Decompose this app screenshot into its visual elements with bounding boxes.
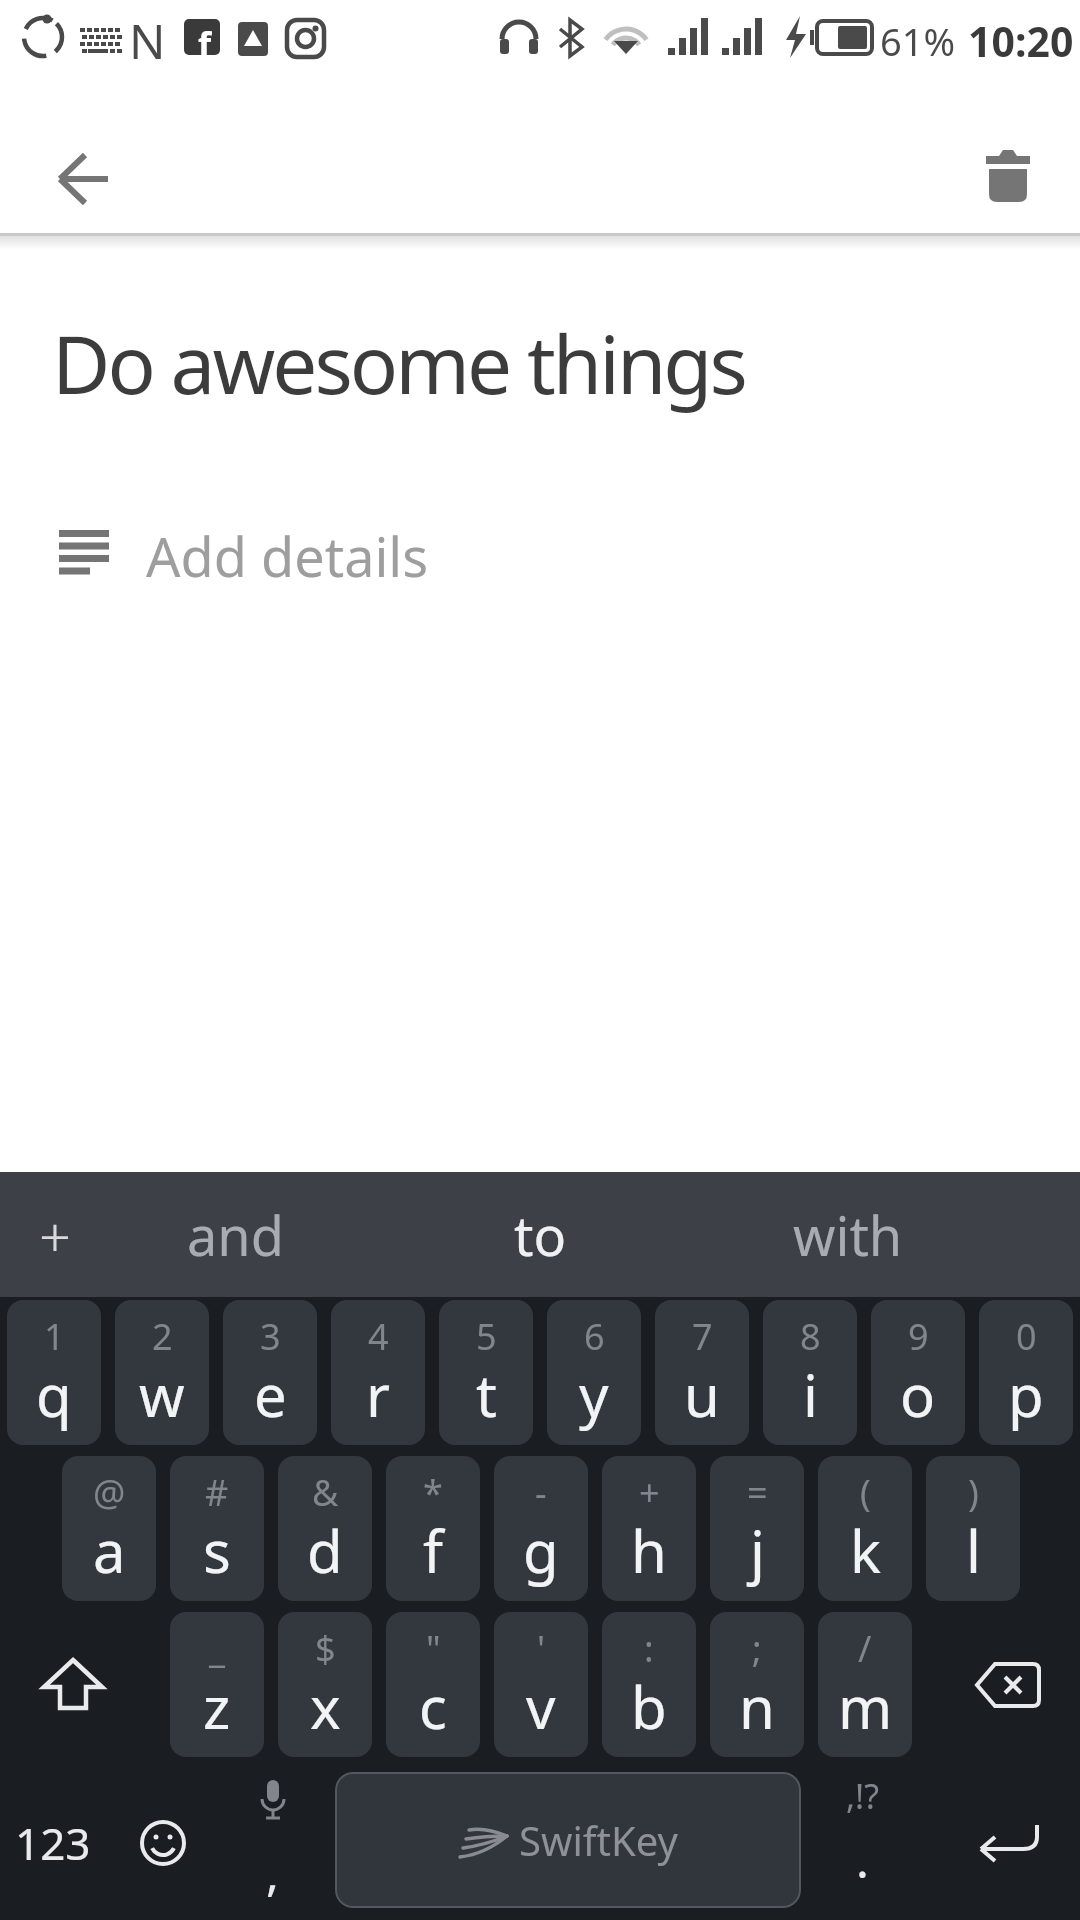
button[interactable]: 1: [7, 1300, 101, 1445]
staticText: s: [203, 1511, 231, 1590]
staticText: k: [850, 1511, 881, 1590]
staticText: #: [205, 1468, 229, 1517]
staticText: j: [750, 1511, 765, 1590]
staticText: t: [476, 1355, 497, 1434]
button[interactable]: with: [738, 1172, 958, 1297]
button[interactable]: =: [710, 1456, 804, 1601]
staticText: o: [900, 1355, 936, 1434]
button[interactable]: [115, 1765, 210, 1920]
button[interactable]: and: [125, 1172, 345, 1297]
button[interactable]: &: [278, 1456, 372, 1601]
staticText: i: [803, 1355, 818, 1434]
staticText: with: [793, 1198, 903, 1272]
button[interactable]: _: [170, 1612, 264, 1757]
staticText: 1: [44, 1312, 65, 1361]
button[interactable]: ,!?: [815, 1765, 910, 1920]
staticText: z: [203, 1667, 231, 1746]
button[interactable]: to: [430, 1172, 650, 1297]
button[interactable]: @: [62, 1456, 156, 1601]
button[interactable]: [960, 125, 1056, 221]
staticText: 0: [1016, 1312, 1037, 1361]
staticText: m: [838, 1667, 893, 1746]
staticText: 123: [15, 1813, 91, 1873]
button[interactable]: 123: [0, 1765, 106, 1920]
staticText: to: [514, 1198, 567, 1272]
button[interactable]: #: [170, 1456, 264, 1601]
staticText: u: [684, 1355, 720, 1434]
button[interactable]: (: [818, 1456, 912, 1601]
button[interactable]: +: [602, 1456, 696, 1601]
staticText: f: [423, 1511, 443, 1590]
staticText: g: [523, 1511, 559, 1590]
button[interactable]: 3: [223, 1300, 317, 1445]
staticText: 2: [152, 1312, 173, 1361]
staticText: 4: [368, 1312, 389, 1361]
staticText: *: [423, 1468, 443, 1517]
staticText: f: [198, 21, 212, 55]
button[interactable]: -: [494, 1456, 588, 1601]
button[interactable]: [945, 1765, 1065, 1920]
button[interactable]: 9: [871, 1300, 965, 1445]
staticText: x: [310, 1667, 341, 1746]
staticText: q: [36, 1355, 72, 1434]
button[interactable]: [15, 1612, 130, 1757]
staticText: ,!?: [846, 1773, 880, 1819]
button[interactable]: +: [20, 1172, 90, 1297]
button[interactable]: /: [818, 1612, 912, 1757]
button[interactable]: 2: [115, 1300, 209, 1445]
button[interactable]: ': [494, 1612, 588, 1757]
staticText: @: [93, 1468, 126, 1517]
button[interactable]: ,: [225, 1765, 320, 1920]
button[interactable]: :: [602, 1612, 696, 1757]
staticText: $: [315, 1624, 336, 1673]
button[interactable]: ): [926, 1456, 1020, 1601]
staticText: -: [535, 1468, 547, 1517]
button[interactable]: Add details: [40, 511, 540, 601]
staticText: v: [526, 1667, 556, 1746]
button[interactable]: SwiftKey: [335, 1772, 801, 1908]
staticText: h: [631, 1511, 667, 1590]
staticText: Add details: [146, 519, 429, 593]
button[interactable]: [36, 131, 132, 227]
staticText: ,: [266, 1840, 279, 1905]
staticText: _: [209, 1624, 225, 1673]
staticText: 6: [584, 1312, 605, 1361]
button[interactable]: $: [278, 1612, 372, 1757]
staticText: .: [856, 1827, 869, 1892]
staticText: p: [1008, 1355, 1044, 1434]
staticText: &: [312, 1468, 339, 1517]
button[interactable]: 7: [655, 1300, 749, 1445]
button[interactable]: 6: [547, 1300, 641, 1445]
staticText: N: [129, 8, 166, 73]
staticText: c: [419, 1667, 447, 1746]
staticText: +: [639, 1468, 660, 1517]
button[interactable]: 5: [439, 1300, 533, 1445]
staticText: and: [187, 1198, 284, 1272]
staticText: ': [537, 1624, 546, 1673]
staticText: n: [739, 1667, 775, 1746]
button[interactable]: [950, 1612, 1065, 1757]
staticText: +: [39, 1197, 71, 1273]
staticText: (: [860, 1468, 871, 1517]
button[interactable]: ": [386, 1612, 480, 1757]
button[interactable]: 8: [763, 1300, 857, 1445]
staticText: e: [254, 1355, 287, 1434]
staticText: =: [747, 1468, 768, 1517]
button[interactable]: 4: [331, 1300, 425, 1445]
staticText: 10:20: [968, 13, 1074, 69]
staticText: a: [93, 1511, 126, 1590]
staticText: 8: [800, 1312, 821, 1361]
button[interactable]: *: [386, 1456, 480, 1601]
staticText: ;: [752, 1624, 762, 1673]
staticText: 5: [476, 1312, 497, 1361]
staticText: w: [139, 1355, 185, 1434]
button[interactable]: ;: [710, 1612, 804, 1757]
staticText: b: [631, 1667, 667, 1746]
staticText: 61%: [880, 15, 956, 67]
button[interactable]: 0: [979, 1300, 1073, 1445]
staticText: 3: [260, 1312, 281, 1361]
staticText: Do awesome things: [52, 308, 745, 417]
staticText: SwiftKey: [519, 1813, 678, 1867]
staticText: y: [579, 1355, 609, 1434]
staticText: 9: [908, 1312, 929, 1361]
